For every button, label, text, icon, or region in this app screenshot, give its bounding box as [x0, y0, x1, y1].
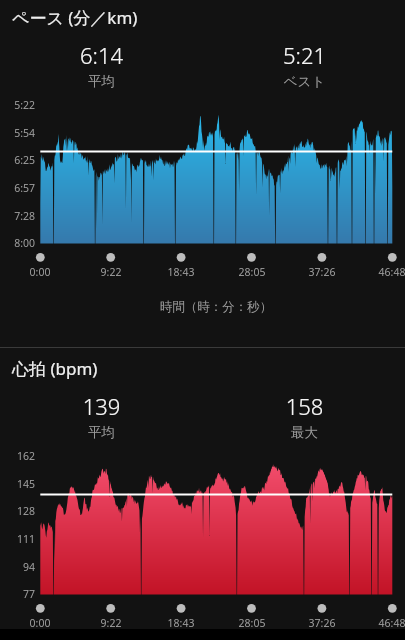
staticText: 9:22: [81, 265, 141, 279]
staticText: 37:26: [292, 265, 352, 279]
staticText: 0:00: [10, 265, 70, 279]
staticText: 28:05: [222, 265, 282, 279]
staticText: 46:48: [362, 616, 405, 630]
staticText: 162: [0, 449, 35, 463]
staticText: 時間（時：分：秒）: [40, 299, 392, 315]
staticText: 6:57: [0, 181, 35, 195]
staticText: 145: [0, 477, 35, 491]
staticText: ペース (分／km): [12, 6, 138, 29]
staticText: 心拍 (bpm): [12, 357, 98, 380]
staticText: 28:05: [222, 616, 282, 630]
staticText: 5:22: [0, 98, 35, 112]
staticText: ベスト: [203, 73, 405, 90]
staticText: 128: [0, 504, 35, 518]
staticText: 46:48: [362, 265, 405, 279]
staticText: 8:00: [0, 236, 35, 250]
staticText: 5:54: [0, 126, 35, 140]
staticText: 37:26: [292, 616, 352, 630]
staticText: 平均: [0, 73, 203, 90]
staticText: 0:00: [10, 616, 70, 630]
staticText: 158: [203, 391, 405, 421]
staticText: 18:43: [151, 265, 211, 279]
staticText: 9:22: [81, 616, 141, 630]
staticText: 18:43: [151, 616, 211, 630]
staticText: 5:21: [203, 40, 405, 70]
staticText: 139: [0, 391, 203, 421]
staticText: 94: [0, 560, 35, 574]
staticText: 111: [0, 532, 35, 546]
staticText: 7:28: [0, 209, 35, 223]
staticText: 6:25: [0, 153, 35, 167]
staticText: 平均: [0, 424, 203, 441]
staticText: 77: [0, 587, 35, 601]
staticText: 最大: [203, 424, 405, 441]
staticText: 6:14: [0, 40, 203, 70]
